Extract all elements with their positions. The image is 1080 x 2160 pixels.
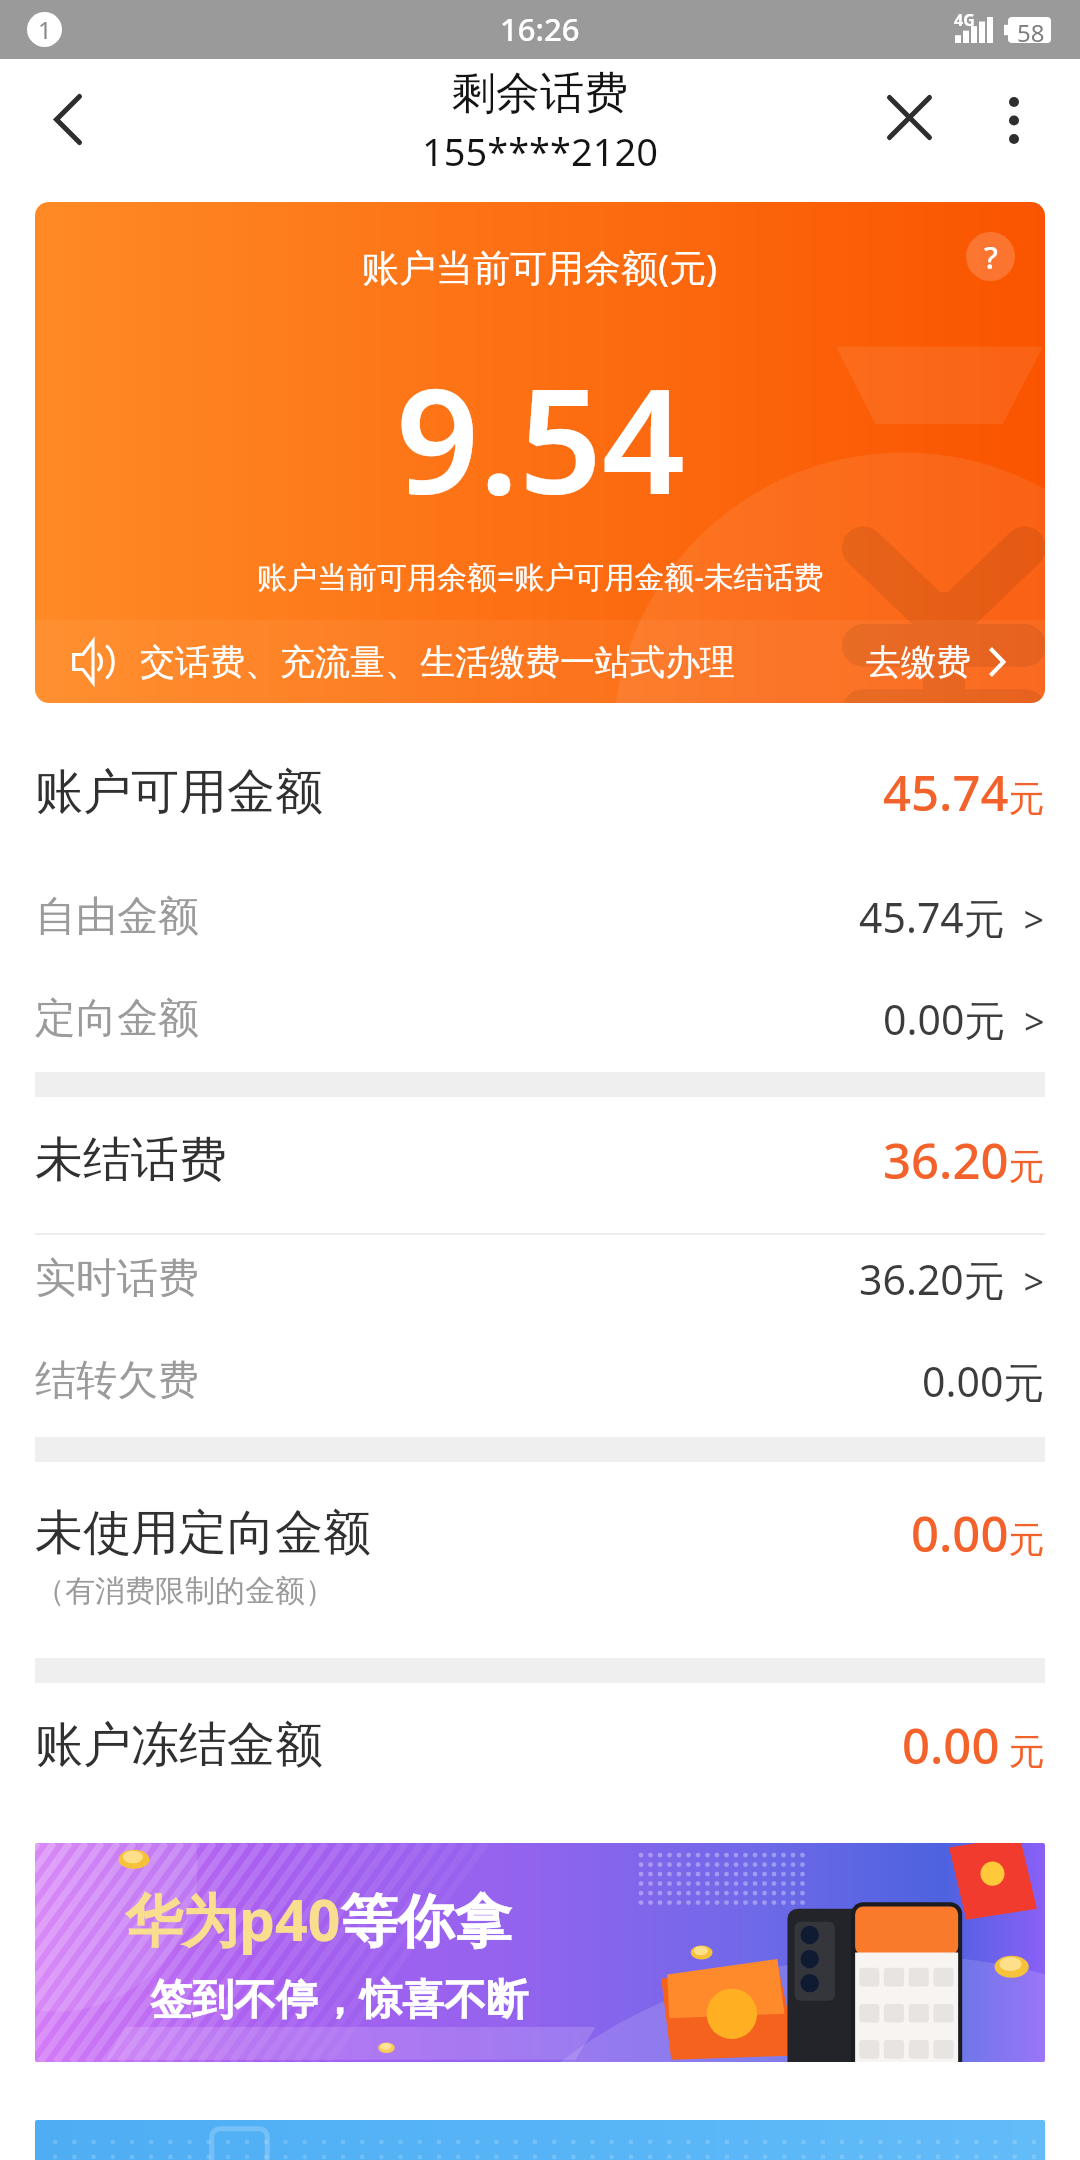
staticText: 16:26 <box>500 8 580 50</box>
staticText: 0.00元 <box>911 1500 1045 1567</box>
button[interactable]: 未结话费 <box>0 1105 1080 1215</box>
staticText: 1 <box>38 13 52 46</box>
button[interactable]: Back <box>27 78 109 160</box>
staticText: 自由金额 <box>35 891 199 943</box>
staticText: 账户当前可用余额=账户可用金额-未结话费 <box>257 556 824 597</box>
button[interactable]: 未使用定向金额 <box>0 1478 1080 1588</box>
button[interactable]: Help <box>966 232 1015 281</box>
button[interactable]: 账户冻结金额 <box>0 1690 1080 1800</box>
staticText: 58 <box>1017 16 1045 42</box>
button[interactable]: 定向金额 <box>0 968 1080 1070</box>
staticText: 4G <box>954 9 975 31</box>
staticText: 9.54 <box>396 339 685 536</box>
staticText: 账户可用金额 <box>35 762 323 822</box>
staticText: 36.20元 <box>883 1127 1045 1194</box>
staticText: 账户当前可用余额(元) <box>362 241 718 292</box>
staticText: 定向金额 <box>35 993 199 1045</box>
staticText: 账户冻结金额 <box>35 1715 323 1775</box>
staticText: 实时话费 <box>35 1253 199 1305</box>
button[interactable]: 账户当前可用余额(元) <box>35 202 1045 703</box>
button[interactable]: 交话费、充流量、生活缴费一站式办理 <box>35 620 1045 703</box>
button[interactable]: 实时话费 <box>0 1228 1080 1330</box>
staticText: 结转欠费 <box>35 1355 199 1407</box>
staticText: 45.74元 <box>883 759 1045 826</box>
button[interactable]: 自由金额 <box>0 866 1080 968</box>
staticText: （有消费限制的金额） <box>35 1572 335 1610</box>
button[interactable] <box>35 2120 1045 2160</box>
staticText: 去缴费 <box>866 640 971 684</box>
button[interactable]: 华为p40等你拿 <box>35 1843 1045 2062</box>
staticText: 36.20元 > <box>859 1251 1045 1307</box>
staticText: 0.00元 <box>922 1353 1045 1409</box>
button[interactable]: More options <box>972 78 1056 162</box>
staticText: 155****2120 <box>422 125 658 177</box>
staticText: 未使用定向金额 <box>35 1503 371 1563</box>
staticText: 0.00 元 <box>902 1712 1045 1779</box>
button[interactable]: Close <box>863 71 955 163</box>
staticText: 华为p40等你拿 <box>125 1880 512 1958</box>
staticText: 0.00元 > <box>883 991 1045 1047</box>
staticText: 签到不停，惊喜不断 <box>150 1974 528 2027</box>
button[interactable]: 结转欠费 <box>0 1330 1080 1432</box>
staticText: ? <box>984 236 998 278</box>
staticText: 剩余话费 <box>452 66 628 121</box>
staticText: 45.74元 > <box>859 889 1045 945</box>
staticText: 交话费、充流量、生活缴费一站式办理 <box>140 640 735 684</box>
button[interactable]: 账户可用金额 <box>0 737 1080 847</box>
staticText: 未结话费 <box>35 1130 227 1190</box>
